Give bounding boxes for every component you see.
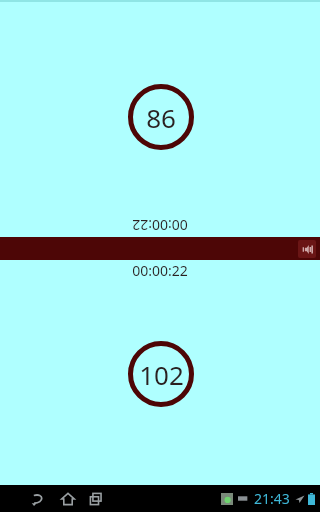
button[interactable]: Sound xyxy=(298,240,316,258)
button[interactable]: Player one score 86 xyxy=(128,84,194,150)
staticText: 102 xyxy=(139,357,184,392)
button[interactable]: Back xyxy=(24,485,52,512)
button[interactable]: Home xyxy=(56,485,80,512)
button[interactable]: Player two score 102 xyxy=(128,341,194,407)
button[interactable]: Recent apps xyxy=(84,485,108,512)
staticText: 21:43 xyxy=(254,489,290,508)
staticText: 86 xyxy=(146,100,176,135)
staticText: 00:00:22 xyxy=(132,216,188,235)
button[interactable]: Sound xyxy=(0,237,320,260)
staticText: 00:00:22 xyxy=(132,261,188,280)
